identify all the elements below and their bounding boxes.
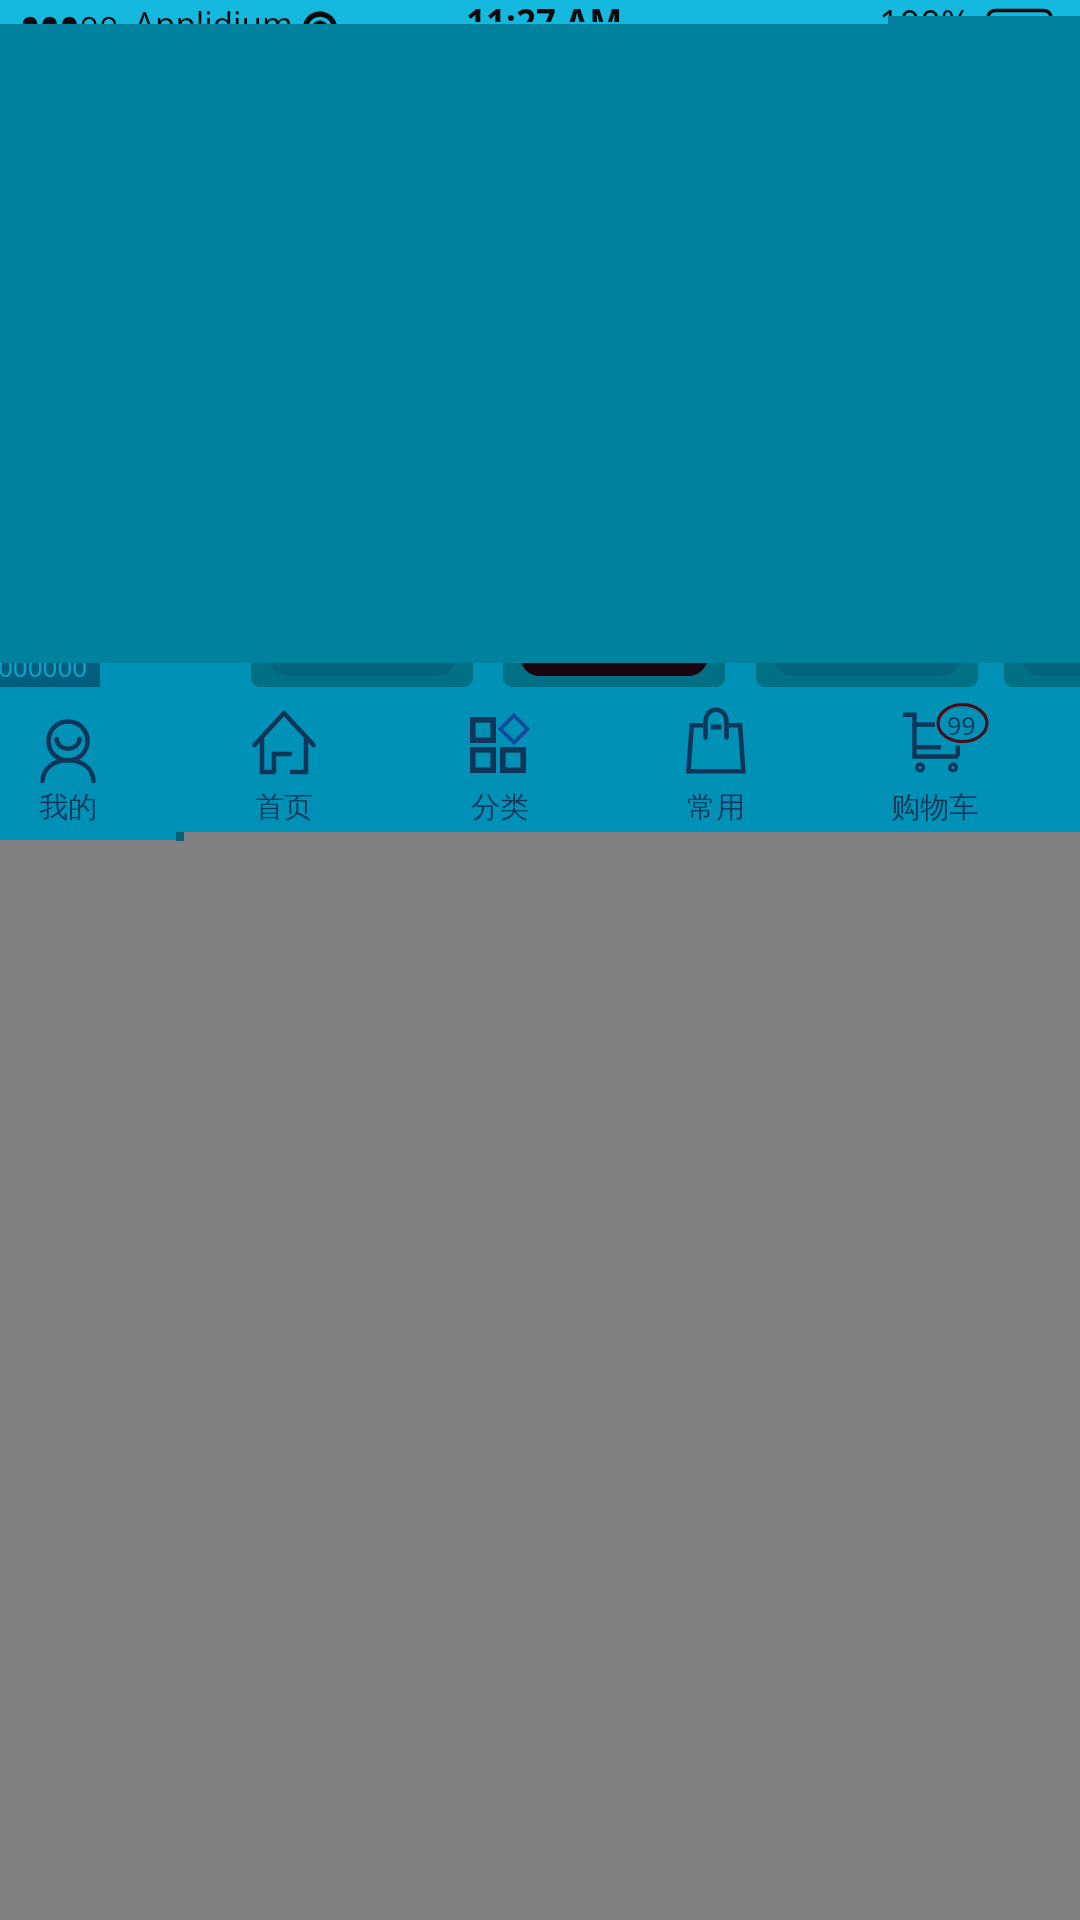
staticText: 100% <box>879 0 971 22</box>
button[interactable]: 我的 <box>0 691 176 840</box>
staticText: 首页 <box>255 789 313 826</box>
staticText: 我的 <box>39 789 97 826</box>
button[interactable] <box>251 354 473 687</box>
staticText: 分类 <box>471 789 529 826</box>
button[interactable] <box>1004 354 1080 687</box>
button[interactable]: 购物车 <box>826 691 1042 840</box>
button[interactable]: 常用 <box>608 691 824 840</box>
button[interactable] <box>503 354 725 687</box>
staticText: Applidium <box>134 1 293 24</box>
button[interactable]: 分类 <box>392 691 608 840</box>
staticText: 购物车 <box>891 789 978 826</box>
button[interactable] <box>756 354 978 687</box>
staticText: 000000万元 <box>0 649 98 687</box>
staticText: 99 <box>947 708 976 742</box>
button[interactable]: 首页 <box>176 691 392 840</box>
staticText: 常用 <box>687 789 745 826</box>
staticText: 11:27 AM <box>466 0 623 22</box>
